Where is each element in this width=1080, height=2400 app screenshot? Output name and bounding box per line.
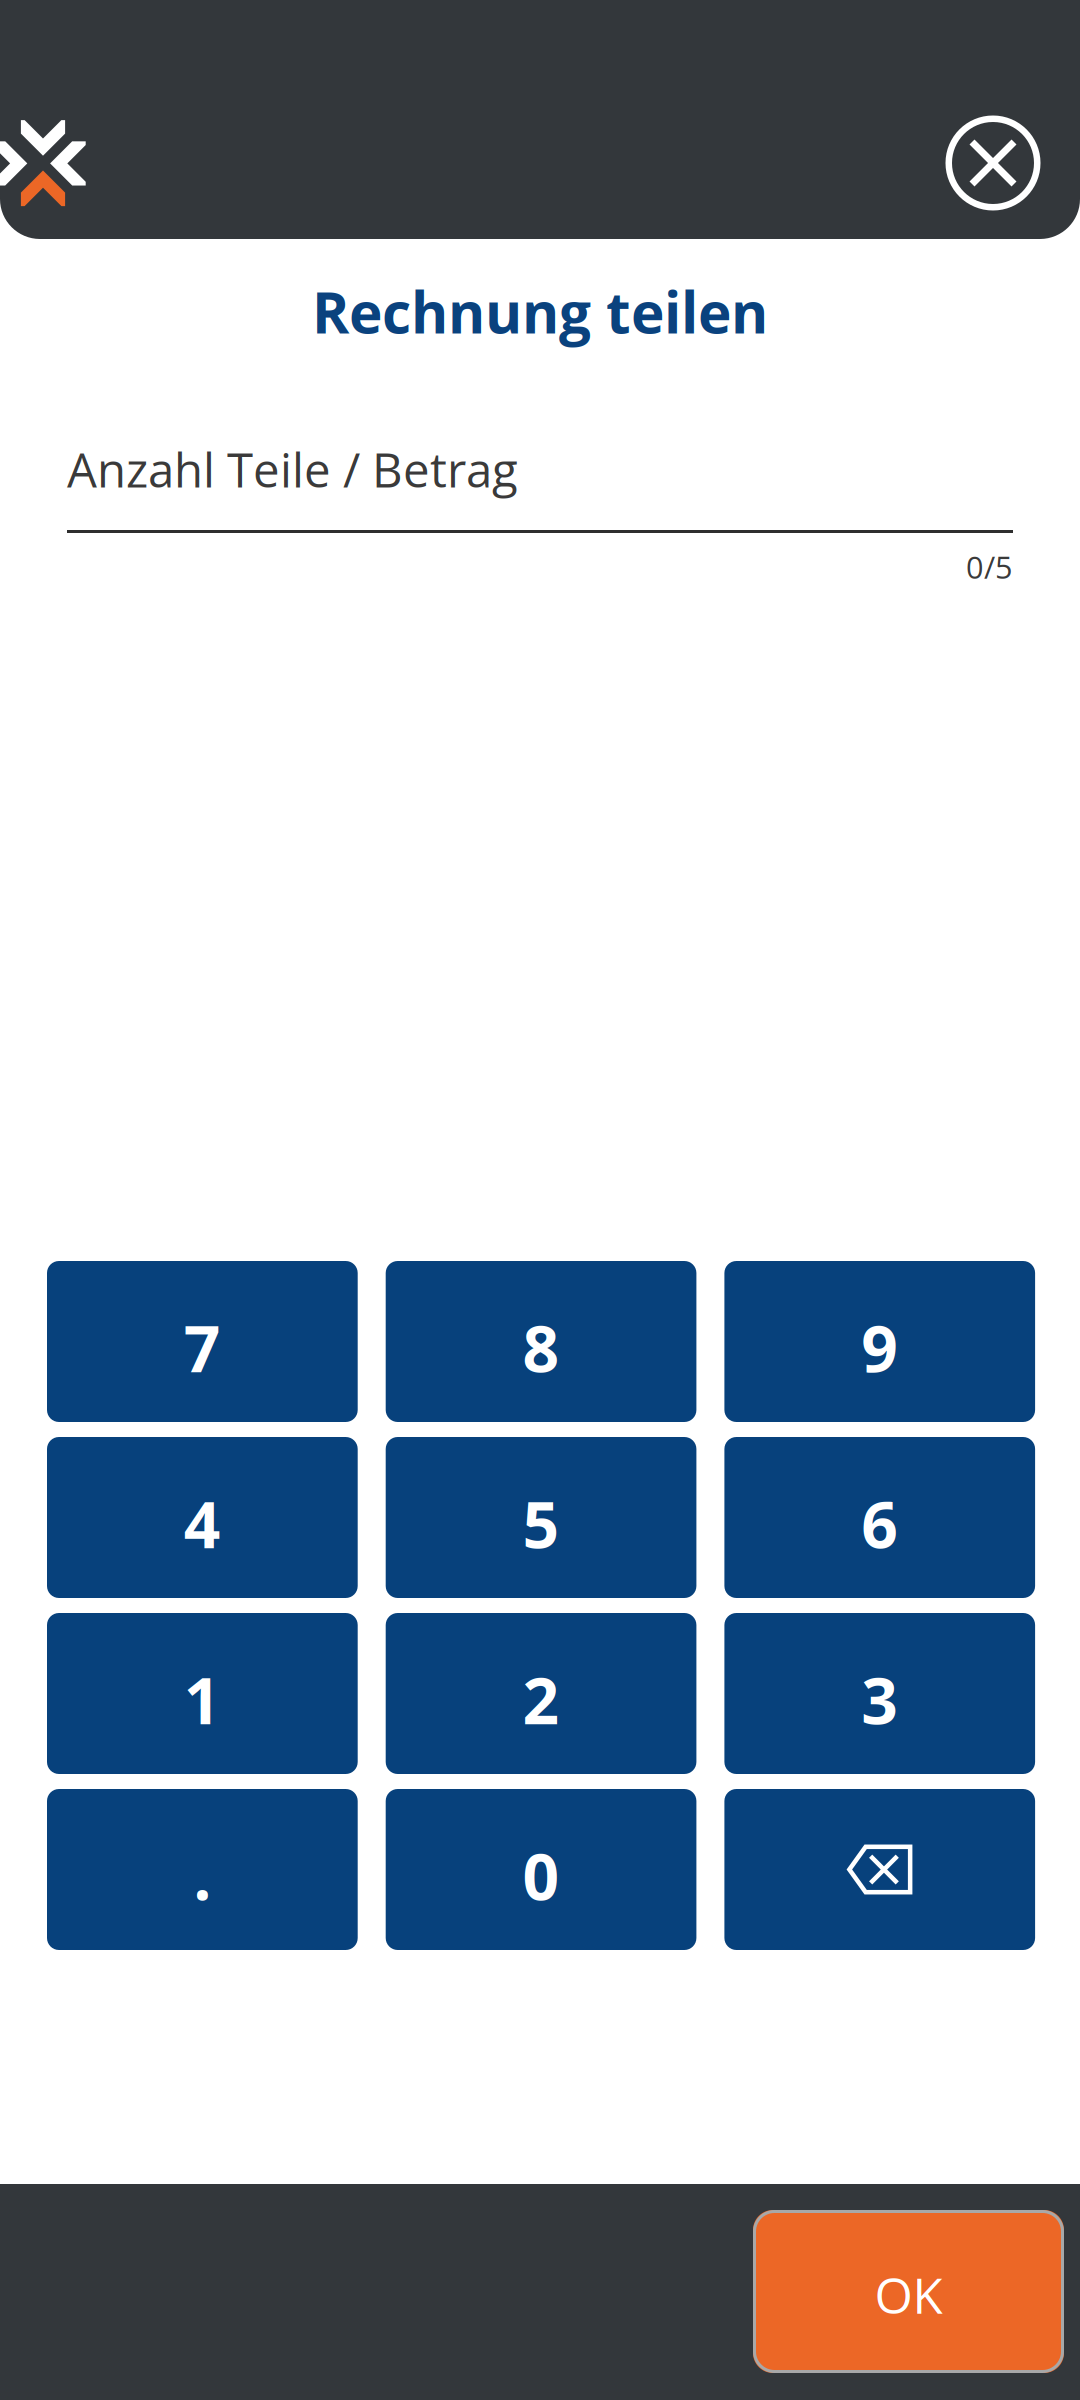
- staticText: 0/5: [966, 546, 1013, 588]
- button[interactable]: 8: [386, 1261, 696, 1422]
- button[interactable]: 4: [47, 1437, 358, 1598]
- button[interactable]: Close: [928, 98, 1058, 228]
- staticText: 8: [522, 1304, 559, 1391]
- staticText: 5: [522, 1480, 559, 1567]
- button[interactable]: 5: [386, 1437, 696, 1598]
- staticText: 2: [522, 1656, 559, 1743]
- staticText: 1: [184, 1656, 221, 1743]
- staticText: .: [193, 1832, 211, 1919]
- staticText: Rechnung teilen: [312, 273, 768, 350]
- staticText: 4: [184, 1480, 221, 1567]
- button[interactable]: 7: [47, 1261, 358, 1422]
- button[interactable]: OK: [753, 2210, 1064, 2373]
- staticText: 3: [861, 1656, 898, 1743]
- button[interactable]: 1: [47, 1613, 358, 1774]
- staticText: Anzahl Teile / Betrag: [67, 437, 518, 501]
- staticText: 7: [184, 1304, 221, 1391]
- button[interactable]: 6: [724, 1437, 1035, 1598]
- button[interactable]: Delete: [724, 1789, 1035, 1950]
- button[interactable]: 3: [724, 1613, 1035, 1774]
- staticText: 6: [861, 1480, 898, 1567]
- button[interactable]: 0: [386, 1789, 696, 1950]
- button[interactable]: 9: [724, 1261, 1035, 1422]
- staticText: 0: [522, 1832, 559, 1919]
- staticText: 9: [861, 1304, 898, 1391]
- button[interactable]: .: [47, 1789, 358, 1950]
- button[interactable]: 2: [386, 1613, 696, 1774]
- staticText: OK: [874, 2261, 942, 2328]
